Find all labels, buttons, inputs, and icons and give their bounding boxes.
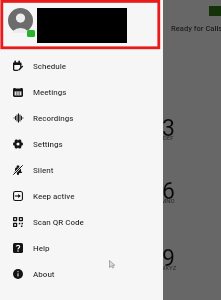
button[interactable]: Silent (0, 157, 163, 183)
button[interactable]: Settings (0, 131, 163, 157)
staticText: 9 (162, 245, 175, 272)
staticText: Scan QR Code (33, 218, 84, 227)
staticText: Ready for Calls (171, 24, 221, 33)
button[interactable]: Schedule (0, 53, 163, 79)
button[interactable]: Keep active (0, 183, 163, 209)
staticText: Schedule (33, 62, 67, 71)
button[interactable]: Close navigation drawer (0, 0, 221, 300)
button[interactable]: Help (0, 235, 163, 261)
staticText: Keep active (33, 192, 75, 201)
staticText: Meetings (33, 88, 67, 97)
button[interactable]: Meetings (0, 79, 163, 105)
staticText: DEF (163, 134, 174, 141)
staticText: Settings (33, 140, 63, 149)
button[interactable]: Recordings (0, 105, 163, 131)
staticText: Silent (33, 166, 54, 175)
staticText: 3 (162, 115, 175, 142)
staticText: About (33, 270, 55, 279)
staticText: Help (33, 244, 50, 253)
staticText: 6 (162, 178, 175, 205)
staticText: WXYZ (160, 264, 177, 271)
staticText: Recordings (33, 114, 74, 123)
button[interactable]: Scan QR Code (0, 209, 163, 235)
button[interactable]: About (0, 261, 163, 287)
staticText: MNO (161, 197, 175, 204)
button[interactable] (0, 0, 163, 48)
